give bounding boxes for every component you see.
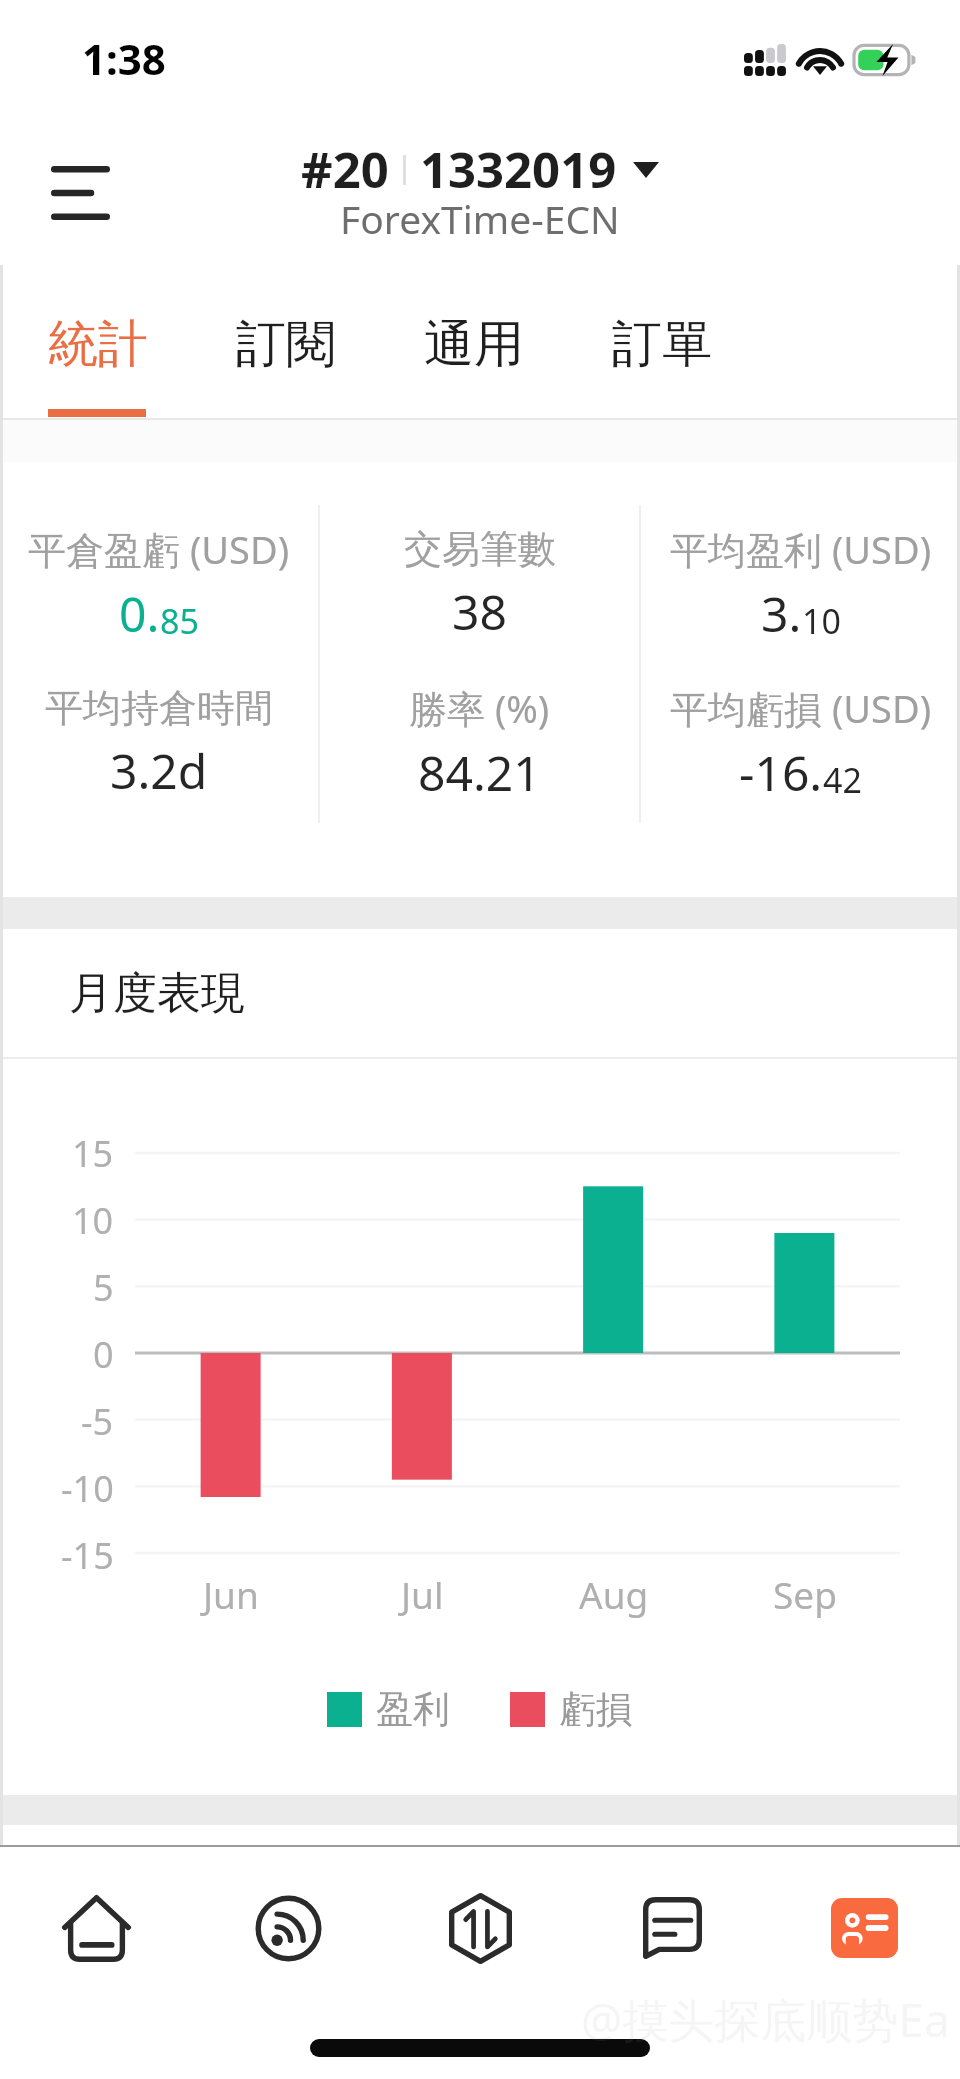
staticText: #20 [301, 136, 389, 203]
staticText: 3. [761, 581, 802, 646]
button[interactable]: 平均虧損 (USD) [641, 664, 960, 823]
staticText: 0. [119, 581, 160, 646]
staticText: 交易筆數 [404, 525, 556, 573]
staticText: 42 [823, 757, 862, 803]
staticText: -10 [61, 1464, 114, 1513]
staticText: 84.21 [418, 740, 541, 805]
staticText: 虧損 [559, 1686, 633, 1733]
staticText: 38 [452, 579, 507, 644]
staticText: 10 [802, 598, 841, 644]
button[interactable]: Quotes [192, 1847, 384, 2009]
button[interactable]: 平倉盈虧 (USD) [0, 505, 318, 664]
button[interactable]: 虧損 [510, 1686, 633, 1733]
staticText: 月度表現 [69, 966, 245, 1021]
staticText: 3.2d [110, 738, 208, 803]
button[interactable]: Chat [576, 1847, 768, 2009]
staticText: Jun [203, 1569, 259, 1619]
staticText: -5 [81, 1397, 114, 1446]
button[interactable]: 交易筆數 [320, 505, 639, 664]
staticText: 5 [93, 1263, 114, 1312]
staticText: 平均盈利 (USD) [670, 523, 932, 575]
staticText: 統計 [48, 313, 148, 376]
button[interactable]: Accounts [768, 1847, 960, 2009]
staticText: -16. [739, 740, 823, 805]
button[interactable]: Home [0, 1847, 192, 2009]
staticText: 10 [72, 1196, 114, 1245]
staticText: 通用 [424, 313, 524, 376]
staticText: 平均持倉時間 [45, 684, 273, 732]
staticText: Sep [773, 1569, 837, 1619]
button[interactable]: Menu [21, 138, 140, 248]
staticText: Aug [579, 1569, 649, 1619]
button[interactable]: 平均盈利 (USD) [641, 505, 960, 664]
button[interactable]: 通用 [424, 265, 612, 418]
button[interactable]: 訂單 [612, 265, 800, 418]
staticText: 盈利 [376, 1686, 450, 1733]
button[interactable]: 訂閱 [236, 265, 424, 418]
staticText: 15 [72, 1129, 114, 1178]
staticText: 1332019 [420, 136, 617, 203]
staticText: 訂閱 [236, 313, 336, 376]
button[interactable]: Trade [384, 1847, 576, 2009]
staticText: 0 [93, 1330, 114, 1379]
staticText: @摸头探底顺势Ea [581, 1988, 950, 2051]
staticText: 平倉盈虧 (USD) [28, 523, 290, 575]
staticText: 平均虧損 (USD) [670, 682, 932, 734]
staticText: 勝率 (%) [409, 682, 550, 734]
button[interactable]: 統計 [48, 265, 236, 418]
button[interactable]: 勝率 (%) [320, 664, 639, 823]
staticText: -15 [61, 1531, 114, 1580]
button[interactable]: #20 [301, 136, 659, 256]
staticText: 訂單 [612, 313, 712, 376]
staticText: 85 [160, 598, 199, 644]
button[interactable]: 盈利 [327, 1686, 450, 1733]
staticText: Jul [401, 1569, 444, 1619]
button[interactable]: 平均持倉時間 [0, 664, 318, 823]
staticText: 1:38 [82, 30, 166, 87]
staticText: ForexTime-ECN [340, 192, 620, 245]
